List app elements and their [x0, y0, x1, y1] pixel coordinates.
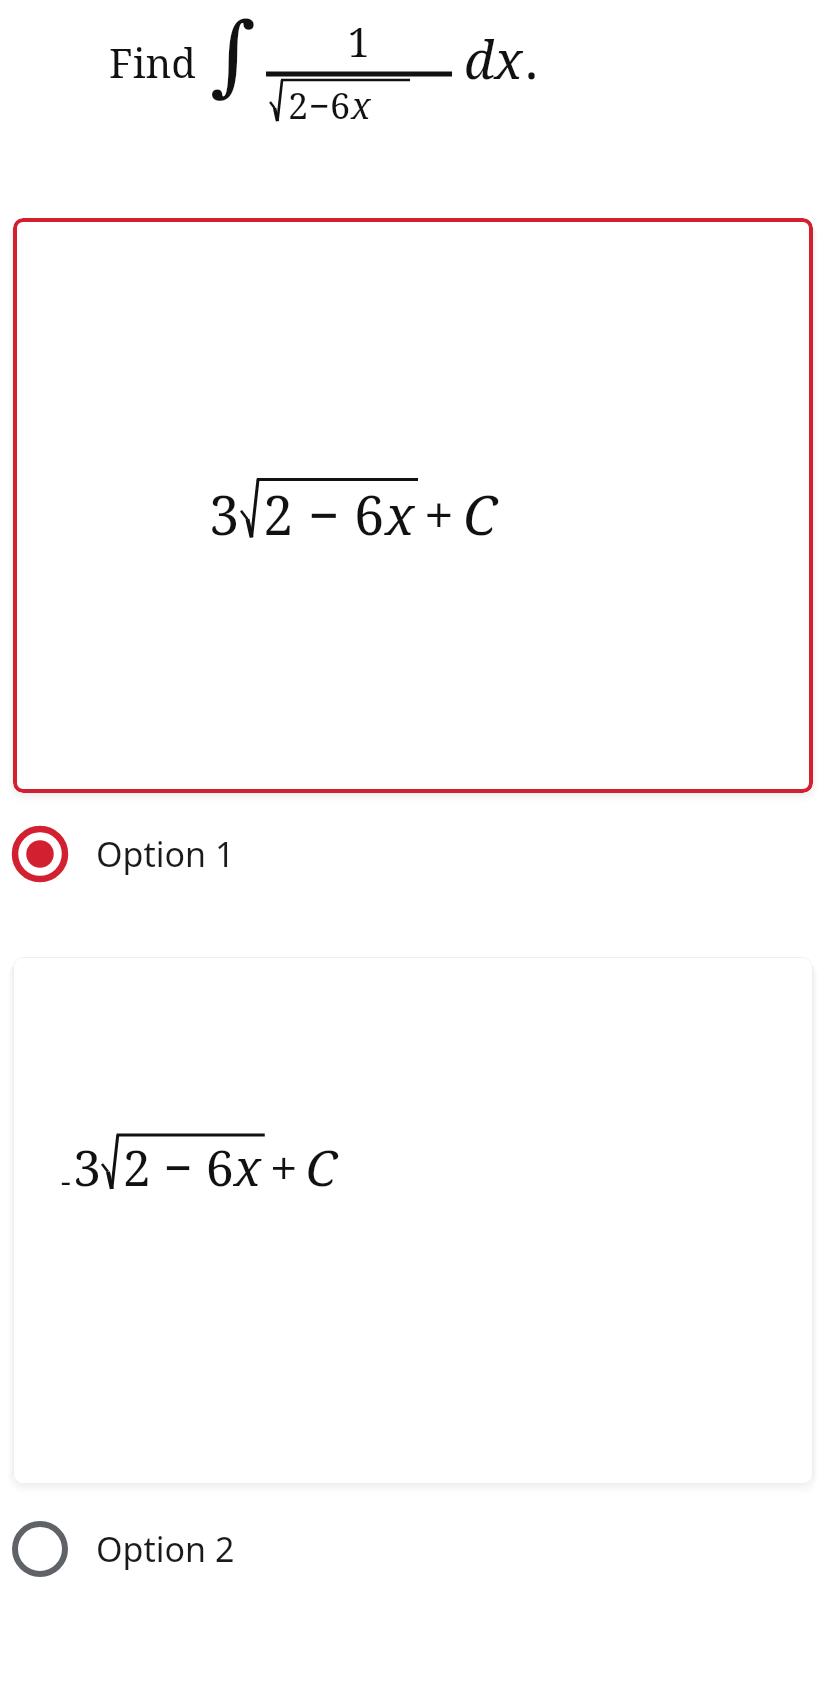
- other: Option 1 selected: [12, 826, 68, 882]
- button[interactable]: Option 1 selected: [0, 823, 826, 885]
- button[interactable]: [13, 218, 813, 793]
- other: Option 2 unselected: [12, 1521, 68, 1577]
- staticText: Option 1: [96, 831, 235, 877]
- button[interactable]: [13, 957, 813, 1484]
- staticText: Option 2: [96, 1526, 235, 1572]
- button[interactable]: Option 2 unselected: [0, 1518, 826, 1580]
